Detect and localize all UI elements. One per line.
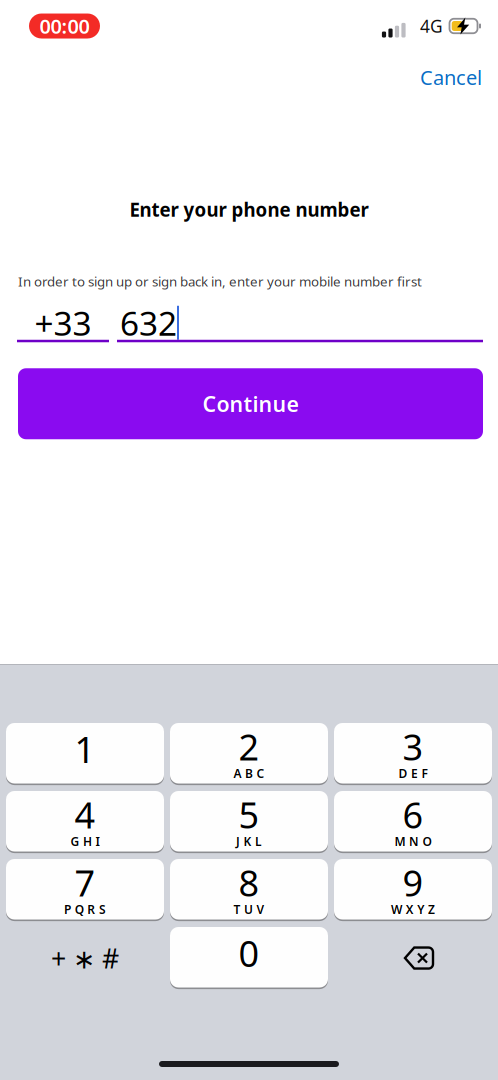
staticText: MNO <box>394 833 432 849</box>
button[interactable]: 1 <box>6 723 164 785</box>
staticText: 5 <box>238 791 259 838</box>
button[interactable]: Continue <box>18 368 483 439</box>
staticText: Continue <box>202 390 298 418</box>
staticText: 2 <box>238 723 259 770</box>
button[interactable]: Delete <box>334 927 492 989</box>
button[interactable]: Plus, star, hash <box>6 927 164 989</box>
button[interactable]: 2 <box>170 723 328 785</box>
button[interactable]: 5 <box>170 791 328 853</box>
staticText: + ∗ # <box>51 940 119 976</box>
staticText: TUV <box>233 901 265 917</box>
staticText: DEF <box>398 765 428 781</box>
staticText: 3 <box>402 723 423 770</box>
button[interactable]: 0 <box>170 927 328 989</box>
button[interactable]: Cancel <box>405 51 497 104</box>
staticText: 4G <box>420 14 443 37</box>
button[interactable]: 4 <box>6 791 164 853</box>
staticText: In order to sign up or sign back in, ent… <box>18 273 422 290</box>
button[interactable]: 3 <box>334 723 492 785</box>
staticText: PQRS <box>64 901 106 917</box>
staticText: WXYZ <box>391 901 435 917</box>
button[interactable]: 8 <box>170 859 328 921</box>
staticText: +33 <box>34 301 91 345</box>
staticText: GHI <box>70 833 100 849</box>
staticText: Enter your phone number <box>129 197 368 222</box>
button[interactable]: 9 <box>334 859 492 921</box>
staticText: 6 <box>402 791 423 838</box>
staticText: 632 <box>120 301 177 345</box>
staticText: 7 <box>74 859 95 906</box>
staticText: 1 <box>74 725 95 773</box>
staticText: 9 <box>402 859 423 906</box>
staticText: 8 <box>238 859 259 906</box>
staticText: 00:00 <box>39 13 89 39</box>
staticText: ABC <box>233 765 265 781</box>
button[interactable]: 6 <box>334 791 492 853</box>
staticText: 4 <box>74 791 95 838</box>
staticText: JKL <box>236 833 262 849</box>
staticText: Cancel <box>420 64 482 91</box>
button[interactable]: 7 <box>6 859 164 921</box>
staticText: 0 <box>238 929 259 977</box>
